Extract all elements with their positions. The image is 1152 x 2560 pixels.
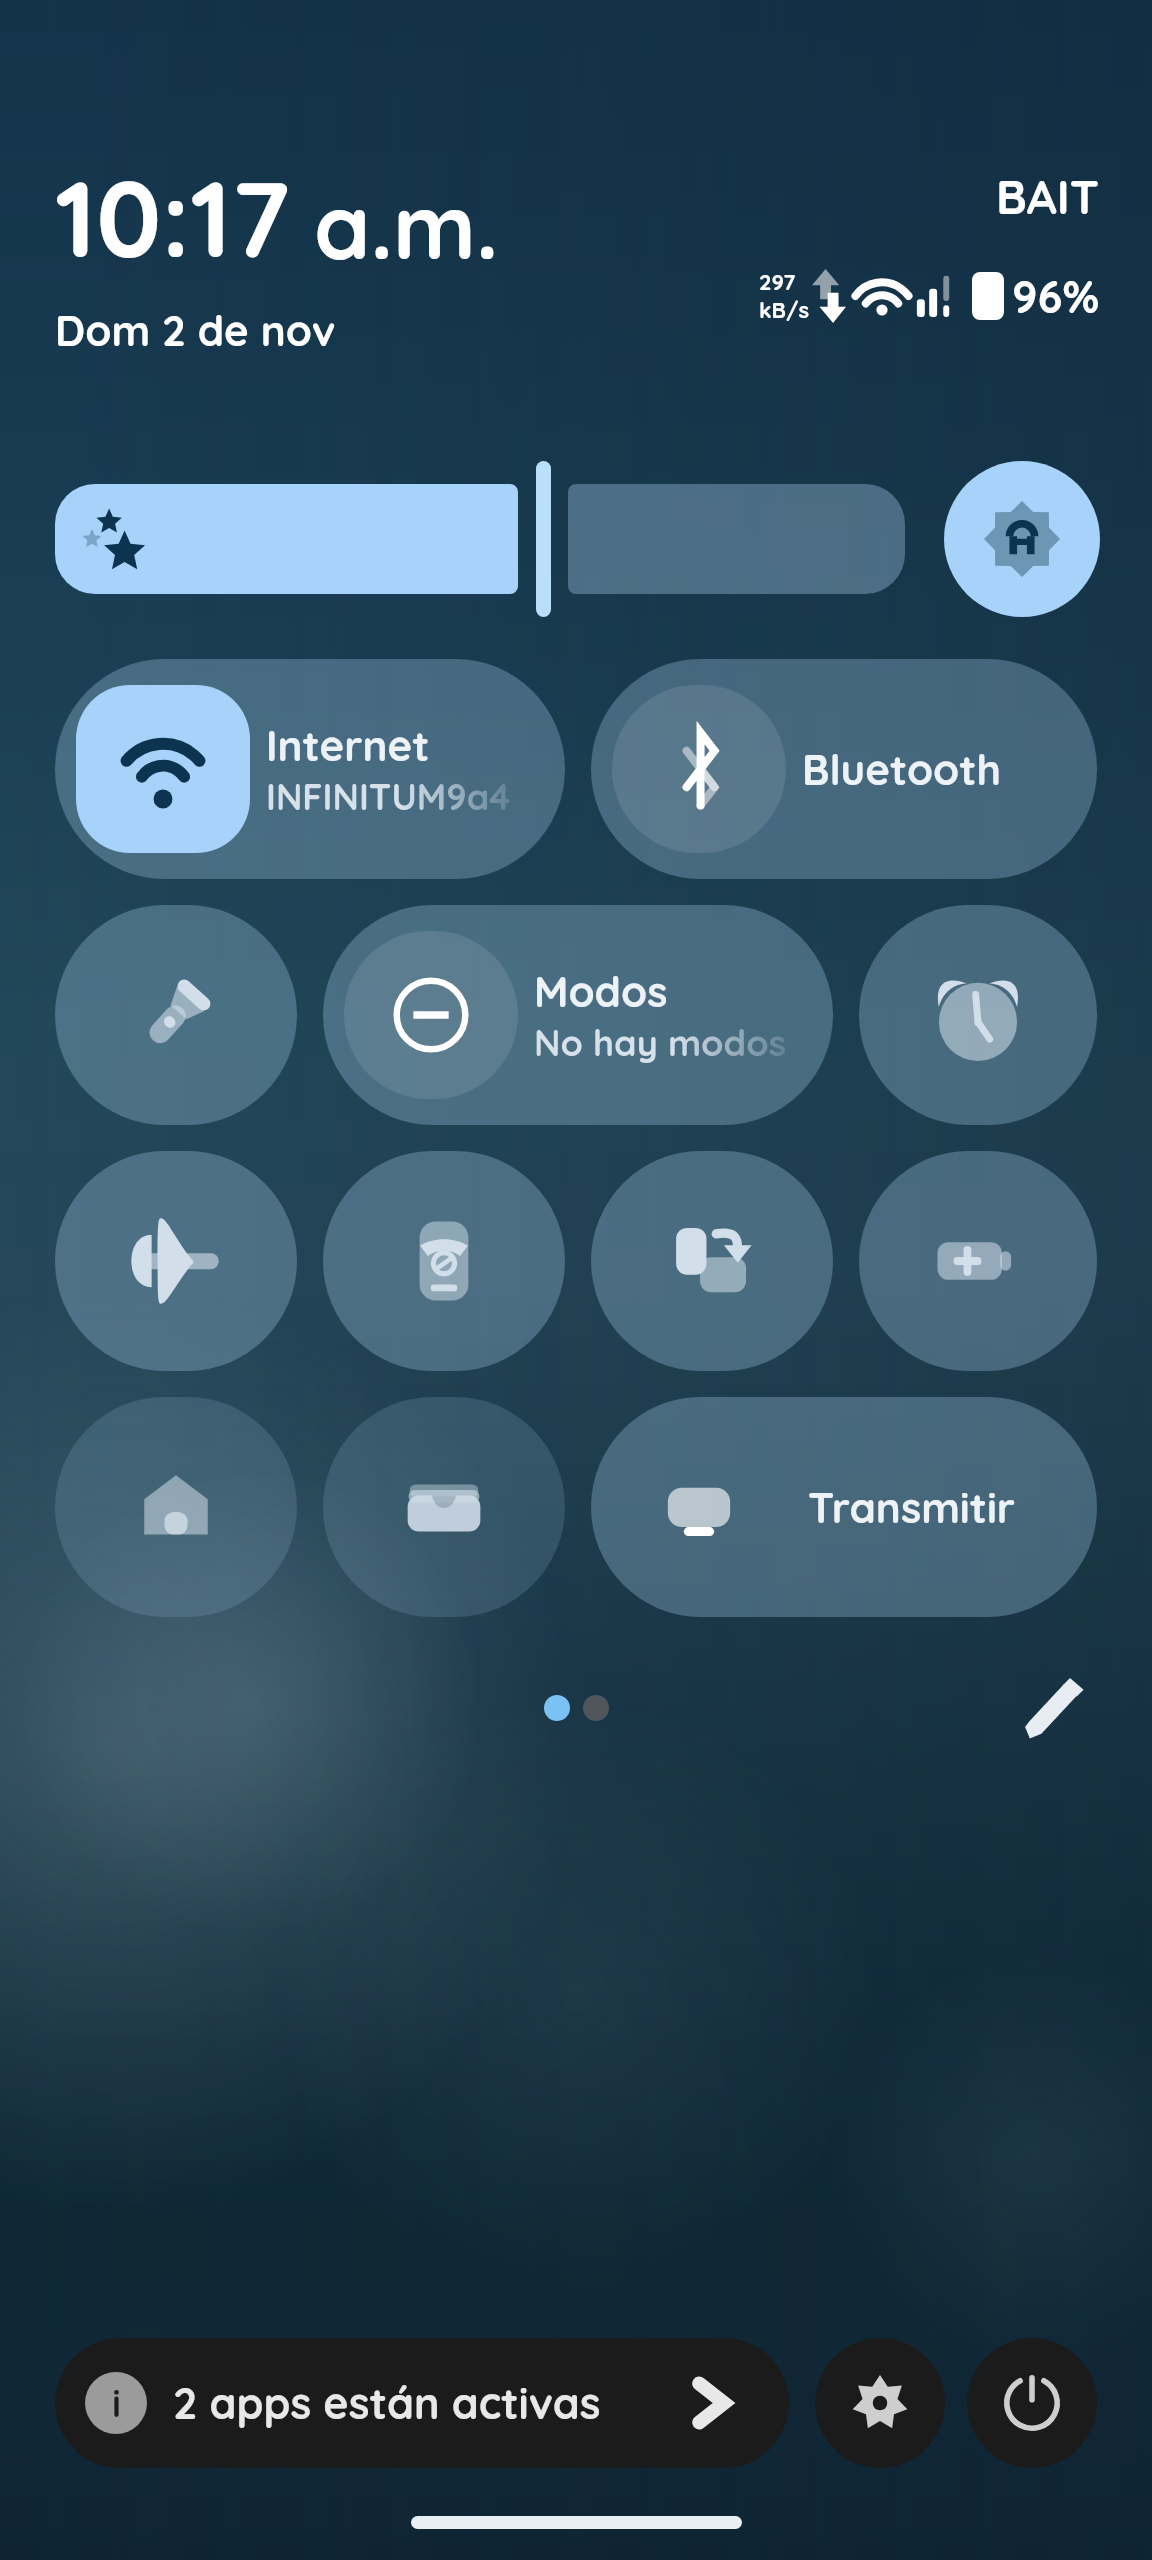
- staticText: i: [112, 2379, 121, 2427]
- button[interactable]: Auto rotate: [591, 1151, 833, 1371]
- staticText: INFINITUM9a4: [266, 774, 511, 819]
- button[interactable]: Wallet: [323, 1397, 565, 1617]
- staticText: 10:17: [55, 151, 290, 284]
- button[interactable]: i: [55, 2338, 789, 2468]
- button[interactable]: Home: [55, 1397, 297, 1617]
- staticText: a.m.: [314, 169, 499, 282]
- button[interactable]: Settings: [815, 2338, 945, 2468]
- button[interactable]: Auto brightness: [944, 461, 1100, 617]
- button[interactable]: Edit tiles: [1018, 1671, 1092, 1745]
- button[interactable]: Bluetooth: [591, 659, 1097, 879]
- staticText: Internet: [266, 719, 430, 772]
- staticText: BAIT: [996, 167, 1100, 226]
- staticText: Modos: [534, 965, 668, 1018]
- button[interactable]: Transmitir: [591, 1397, 1097, 1617]
- button[interactable]: Modos: [323, 905, 833, 1125]
- button[interactable]: [55, 461, 905, 617]
- staticText: Bluetooth: [802, 743, 1002, 796]
- button[interactable]: Battery saver: [859, 1151, 1097, 1371]
- staticText: Dom 2 de nov: [55, 304, 336, 357]
- staticText: 2 apps están activas: [173, 2376, 601, 2430]
- button[interactable]: Internet: [55, 659, 565, 879]
- button[interactable]: Alarm: [859, 905, 1097, 1125]
- staticText: 96%: [1012, 268, 1100, 324]
- button[interactable]: Flashlight: [55, 905, 297, 1125]
- button[interactable]: Airplane mode: [55, 1151, 297, 1371]
- staticText: No hay modos: [534, 1020, 787, 1065]
- button[interactable]: Power: [967, 2338, 1097, 2468]
- staticText: kB/s: [759, 296, 810, 324]
- button[interactable]: Mute: [323, 1151, 565, 1371]
- staticText: 297: [759, 268, 796, 296]
- staticText: Transmitir: [808, 1481, 1016, 1534]
